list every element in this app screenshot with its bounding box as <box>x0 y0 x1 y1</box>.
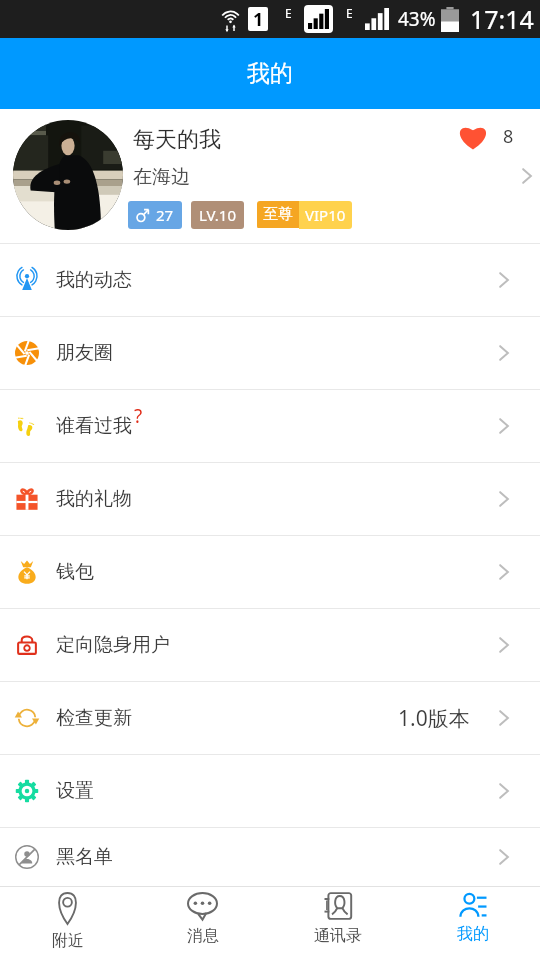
button[interactable]: 钱包 <box>0 536 540 608</box>
staticText: 通讯录 <box>314 926 362 946</box>
button[interactable]: 朋友圈 <box>0 317 540 389</box>
button[interactable]: 我的礼物 <box>0 463 540 535</box>
staticText: 17:14 <box>470 2 534 36</box>
button[interactable]: 设置 <box>0 755 540 827</box>
staticText: 1.0版本 <box>398 704 470 733</box>
staticText: 定向隐身用户 <box>56 633 170 657</box>
staticText: 每天的我 <box>133 126 221 154</box>
button[interactable]: 附近 <box>0 887 135 960</box>
staticText: 附近 <box>52 931 84 951</box>
staticText: ? <box>134 403 143 429</box>
staticText: 我的动态 <box>56 268 132 292</box>
staticText: 设置 <box>56 779 94 803</box>
staticText: 钱包 <box>56 560 94 584</box>
staticText: 我的礼物 <box>56 487 132 511</box>
staticText: 1 <box>253 7 264 31</box>
staticText: E <box>346 5 353 21</box>
staticText: 至尊 <box>263 205 293 224</box>
button[interactable]: 检查更新 <box>0 682 540 754</box>
staticText: 27 <box>156 205 174 225</box>
staticText: 8 <box>503 124 514 149</box>
staticText: LV.10 <box>199 205 236 225</box>
button[interactable]: 黑名单 <box>0 828 540 886</box>
button[interactable]: 消息 <box>135 887 270 960</box>
staticText: 黑名单 <box>56 845 113 869</box>
button[interactable]: 谁看过我 <box>0 390 540 462</box>
staticText: VIP10 <box>305 205 346 225</box>
staticText: E <box>285 5 292 21</box>
staticText: 检查更新 <box>56 706 132 730</box>
button[interactable]: 我的动态 <box>0 244 540 316</box>
staticText: 43% <box>398 6 436 32</box>
button[interactable]: 定向隐身用户 <box>0 609 540 681</box>
staticText: 朋友圈 <box>56 341 113 365</box>
button[interactable]: 我的 <box>405 887 540 960</box>
staticText: 我的 <box>457 924 489 944</box>
button[interactable]: 每天的我 <box>0 109 540 243</box>
staticText: 在海边 <box>133 165 190 189</box>
staticText: 消息 <box>187 926 219 946</box>
staticText: 谁看过我 <box>56 414 132 438</box>
staticText: 我的 <box>247 59 293 88</box>
button[interactable]: 通讯录 <box>270 887 405 960</box>
